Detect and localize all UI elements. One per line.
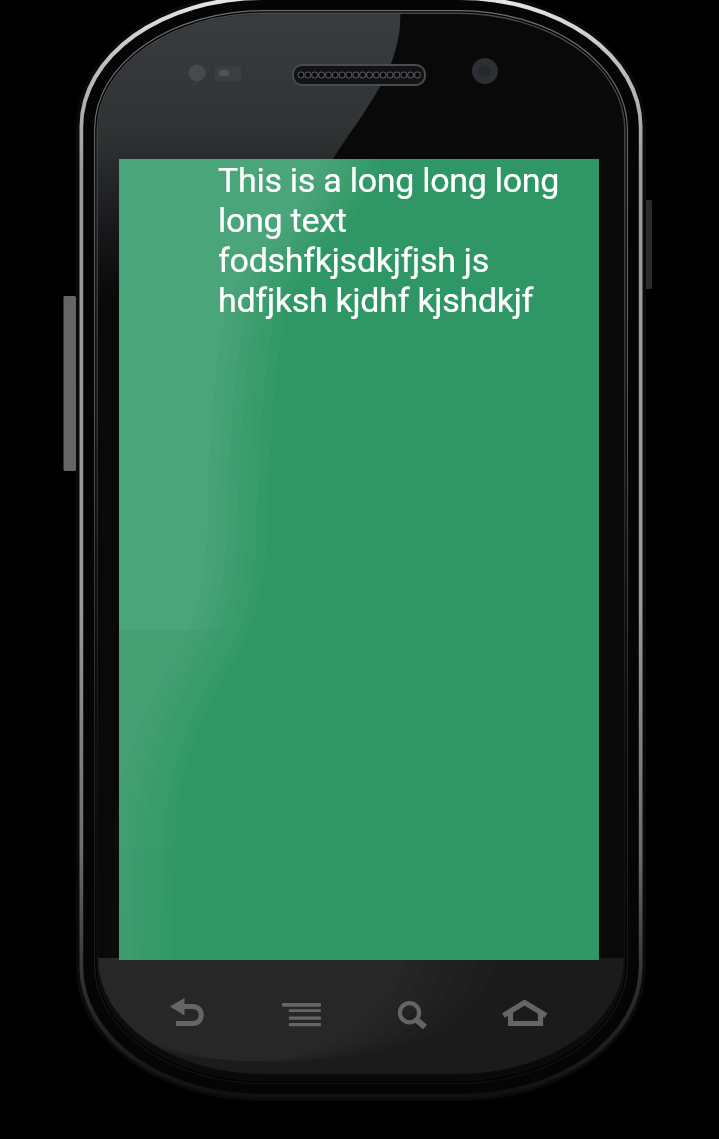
button[interactable]: Back — [158, 984, 230, 1046]
button[interactable]: Menu — [269, 984, 341, 1046]
button[interactable]: Home — [491, 984, 563, 1046]
button[interactable]: Search — [380, 984, 452, 1046]
staticText: This is a long long long long text fodsh… — [218, 160, 568, 320]
button[interactable]: This is a long long long long text fodsh… — [119, 159, 599, 960]
